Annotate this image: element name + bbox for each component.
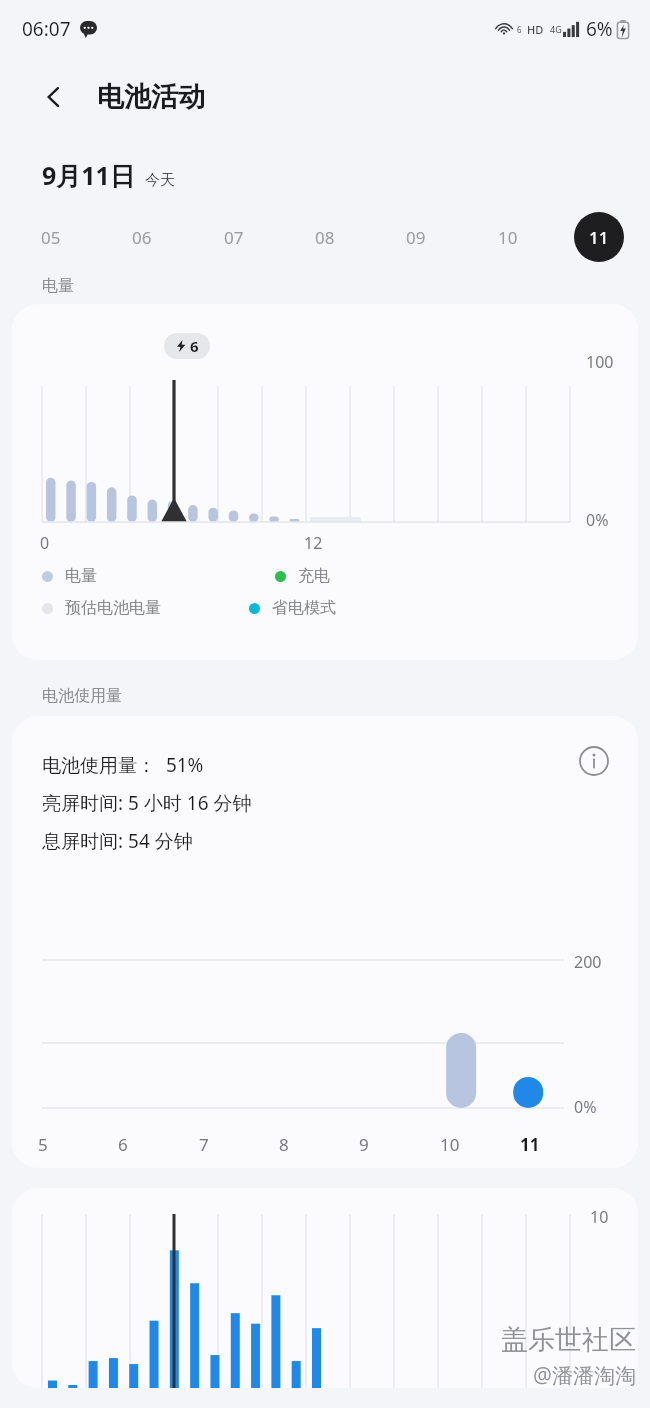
button[interactable]: 电池使用量： 51% — [12, 716, 638, 1168]
staticText: 6 — [118, 1133, 152, 1156]
staticText: 5 — [38, 1133, 72, 1156]
button[interactable]: 09 — [391, 212, 441, 262]
staticText: 10 — [498, 226, 518, 249]
staticText: 11 — [520, 1133, 554, 1156]
staticText: 预估电池电量 — [65, 598, 161, 618]
staticText: 今天 — [145, 171, 175, 190]
staticText: 12 — [304, 532, 323, 554]
staticText: 4G — [550, 23, 562, 35]
staticText: 08 — [315, 226, 335, 249]
staticText: HD — [527, 22, 544, 37]
staticText: 11 — [589, 226, 609, 249]
staticText: 电量 — [65, 566, 97, 586]
button[interactable]: 10 — [483, 212, 533, 262]
staticText: 省电模式 — [272, 598, 336, 618]
button[interactable]: 06 — [117, 212, 167, 262]
staticText: 0% — [586, 509, 609, 531]
staticText: 亮屏时间: 5 小时 16 分钟 — [42, 790, 252, 816]
button[interactable]: 6 — [12, 304, 638, 660]
staticText: 07 — [224, 226, 244, 249]
staticText: 电池活动 — [97, 80, 205, 114]
staticText: 电池使用量 — [42, 686, 122, 706]
staticText: 电量 — [42, 276, 74, 296]
staticText: @潘潘淘淘 — [533, 1361, 636, 1390]
staticText: 7 — [199, 1133, 233, 1156]
staticText: 6 — [517, 24, 522, 35]
staticText: 0 — [40, 532, 50, 554]
button[interactable]: 05 — [26, 212, 76, 262]
staticText: 100 — [586, 351, 614, 373]
staticText: 10 — [440, 1133, 474, 1156]
button[interactable]: Back — [34, 77, 74, 117]
staticText: 盖乐世社区 — [501, 1323, 636, 1357]
button[interactable]: 07 — [209, 212, 259, 262]
staticText: 9 — [359, 1133, 393, 1156]
staticText: 电池使用量： 51% — [42, 752, 204, 778]
staticText: 10 — [590, 1206, 609, 1228]
staticText: 6 — [190, 336, 199, 356]
staticText: 6% — [586, 16, 613, 42]
button[interactable]: 08 — [300, 212, 350, 262]
staticText: 充电 — [298, 566, 330, 586]
button[interactable]: Info — [574, 741, 614, 781]
staticText: 09 — [406, 226, 426, 249]
button[interactable]: 10 — [12, 1188, 638, 1388]
staticText: 05 — [41, 226, 61, 249]
staticText: 06 — [132, 226, 152, 249]
staticText: 8 — [279, 1133, 313, 1156]
staticText: 06:07 — [22, 16, 71, 42]
staticText: 200 — [574, 951, 602, 973]
staticText: 9月11日 — [42, 158, 135, 192]
staticText: 息屏时间: 54 分钟 — [42, 828, 193, 854]
staticText: 0% — [574, 1096, 597, 1118]
button[interactable]: 11 — [574, 212, 624, 262]
